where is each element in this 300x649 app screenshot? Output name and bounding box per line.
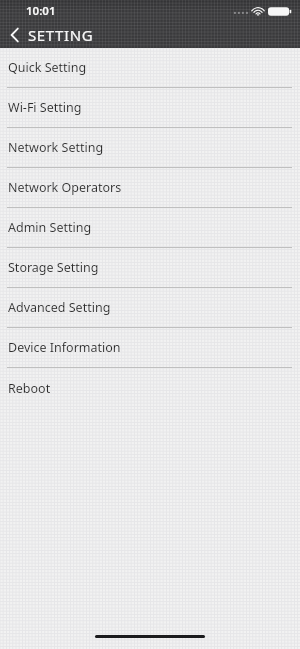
staticText: SETTING: [28, 25, 94, 45]
button[interactable]: Quick Setting: [0, 48, 300, 88]
staticText: Storage Setting: [8, 259, 99, 276]
staticText: Wi-Fi Setting: [8, 99, 82, 116]
staticText: Reboot: [8, 380, 51, 397]
button[interactable]: Storage Setting: [0, 248, 300, 288]
button[interactable]: Admin Setting: [0, 208, 300, 248]
button[interactable]: Wi-Fi Setting: [0, 88, 300, 128]
staticText: 10:01: [26, 3, 56, 19]
staticText: Advanced Setting: [8, 299, 111, 316]
button[interactable]: Network Setting: [0, 128, 300, 168]
button[interactable]: Advanced Setting: [0, 288, 300, 328]
staticText: Network Setting: [8, 139, 104, 156]
button[interactable]: Device Information: [0, 328, 300, 368]
button[interactable]: Reboot: [0, 368, 300, 408]
staticText: Device Information: [8, 339, 121, 356]
staticText: Admin Setting: [8, 219, 92, 236]
staticText: Network Operators: [8, 179, 122, 196]
button[interactable]: Back to previous screen: [0, 22, 300, 48]
button[interactable]: Network Operators: [0, 168, 300, 208]
staticText: Quick Setting: [8, 59, 87, 76]
